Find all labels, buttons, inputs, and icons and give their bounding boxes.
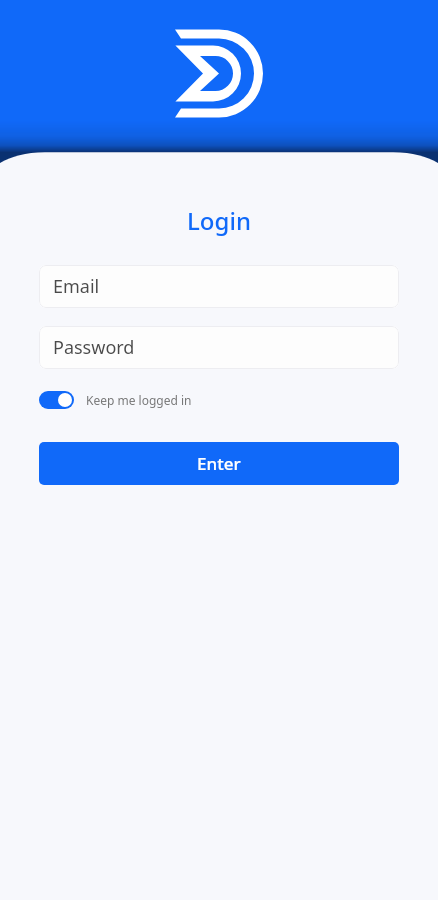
staticText: Keep me logged in xyxy=(86,392,192,408)
staticText: Email xyxy=(53,274,100,299)
staticText: Enter xyxy=(197,452,241,475)
button[interactable]: Password xyxy=(39,326,399,369)
staticText: Login xyxy=(0,204,438,237)
button[interactable]: Enter xyxy=(39,442,399,485)
button[interactable]: Email xyxy=(39,265,399,308)
button[interactable]: Keep me logged in toggle xyxy=(39,391,74,409)
other: App logo xyxy=(172,27,267,120)
staticText: Password xyxy=(53,335,135,360)
